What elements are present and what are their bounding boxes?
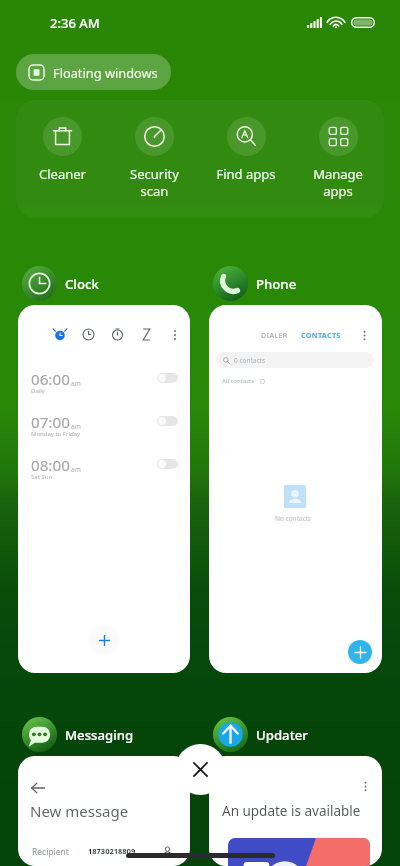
- button[interactable]: Phone: [209, 266, 382, 673]
- staticText: am: [71, 465, 81, 474]
- staticText: am: [71, 379, 81, 388]
- staticText: No contacts: [275, 514, 312, 523]
- button[interactable]: Updater: [209, 717, 382, 866]
- staticText: An update is available: [222, 802, 361, 820]
- staticText: 06:00: [31, 369, 70, 390]
- staticText: Security scan: [130, 165, 179, 200]
- button[interactable]: Back: [28, 778, 48, 798]
- button[interactable]: Cleaner: [22, 100, 102, 183]
- button[interactable]: Add alarm: [89, 625, 119, 655]
- staticText: Cleaner: [39, 165, 86, 183]
- staticText: 07:00: [31, 412, 70, 433]
- staticText: New message: [30, 801, 129, 821]
- staticText: Find apps: [216, 165, 276, 183]
- button[interactable]: Manage apps: [298, 100, 378, 200]
- staticText: Daily: [31, 387, 45, 395]
- button[interactable]: 0 contacts: [216, 352, 374, 368]
- staticText: All contacts: [222, 377, 255, 385]
- button[interactable]: Close all: [175, 744, 226, 795]
- staticText: am: [71, 422, 81, 431]
- staticText: 18730218809: [88, 846, 136, 856]
- button[interactable]: More options: [356, 327, 372, 343]
- staticText: Phone: [256, 275, 297, 293]
- button[interactable]: Messaging: [18, 717, 190, 866]
- button[interactable]: More options: [357, 778, 373, 794]
- staticText: Floating windows: [53, 64, 158, 81]
- button[interactable]: Floating windows: [16, 54, 171, 90]
- staticText: Updater: [256, 726, 308, 744]
- staticText: Manage apps: [313, 165, 363, 200]
- staticText: 0 contacts: [234, 356, 266, 365]
- button[interactable]: Add contact: [348, 640, 372, 664]
- staticText: Messaging: [65, 726, 134, 744]
- button[interactable]: 07:00: [18, 411, 190, 439]
- button[interactable]: 08:00: [18, 454, 190, 482]
- button[interactable]: CONTACTS: [301, 330, 341, 340]
- staticText: 08:00: [31, 455, 70, 476]
- staticText: 2:36 AM: [50, 14, 100, 32]
- staticText: Recipient: [32, 846, 69, 858]
- button[interactable]: Clock: [18, 266, 190, 673]
- staticText: Monday to Friday: [31, 430, 81, 438]
- staticText: Clock: [65, 275, 99, 293]
- button[interactable]: Find apps: [206, 100, 286, 183]
- staticText: Sat Sun: [31, 473, 53, 481]
- button[interactable]: 06:00: [18, 368, 190, 396]
- button[interactable]: DIALER: [261, 330, 288, 340]
- button[interactable]: Security scan: [114, 100, 194, 200]
- button[interactable]: Choose contact: [158, 842, 176, 860]
